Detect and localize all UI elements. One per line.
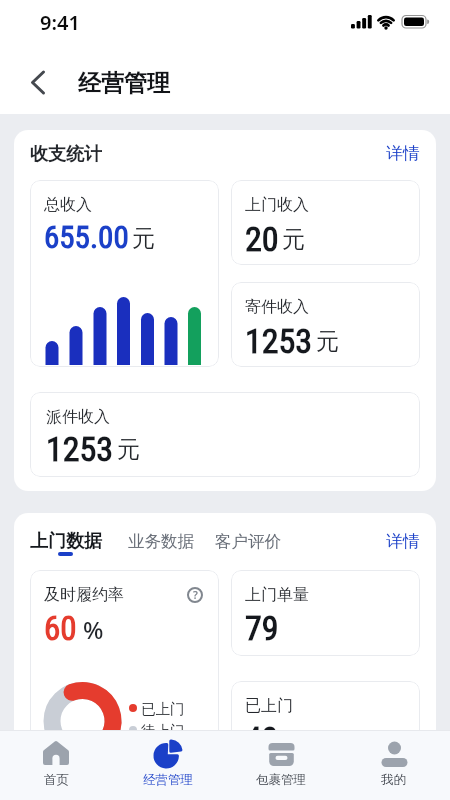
button[interactable]: 详情 <box>386 143 420 163</box>
staticText: 1253 <box>46 429 114 469</box>
staticText: 元 <box>316 327 339 356</box>
staticText: 元 <box>117 435 140 464</box>
staticText: 待上门 <box>141 722 185 740</box>
button[interactable]: ? <box>187 587 203 603</box>
button[interactable]: 首页 <box>0 731 112 800</box>
staticText: 1253 <box>245 321 313 361</box>
staticText: 及时履约率 <box>44 585 124 605</box>
staticText: 60 <box>44 609 77 648</box>
button[interactable]: 包裹管理 <box>224 731 337 800</box>
button[interactable]: 客户评价 <box>215 531 281 552</box>
button[interactable]: 详情 <box>386 531 420 552</box>
staticText: 79 <box>245 608 279 648</box>
staticText: ? <box>193 588 198 602</box>
button[interactable]: 经营管理 <box>112 731 224 800</box>
staticText: 9:41 <box>40 9 80 36</box>
staticText: 已上门 <box>141 700 185 718</box>
staticText: 首页 <box>44 772 69 788</box>
button[interactable]: 我的 <box>337 731 450 800</box>
staticText: % <box>83 613 104 646</box>
button[interactable]: 业务数据 <box>128 531 194 552</box>
staticText: 元 <box>132 224 155 253</box>
staticText: 收支统计 <box>30 143 102 163</box>
staticText: 49 <box>245 719 279 759</box>
button[interactable] <box>22 66 54 98</box>
staticText: 经营管理 <box>78 69 170 98</box>
staticText: 寄件收入 <box>245 297 309 317</box>
staticText: 经营管理 <box>143 772 193 788</box>
staticText: 元 <box>282 225 305 254</box>
staticText: 派件收入 <box>46 407 110 427</box>
staticText: 总收入 <box>44 195 92 215</box>
staticText: 655.00 <box>44 219 129 255</box>
staticText: 20 <box>245 219 279 259</box>
staticText: 已上门 <box>245 696 293 716</box>
staticText: 上门单量 <box>245 585 309 605</box>
staticText: 上门收入 <box>245 195 309 215</box>
button[interactable]: 上门数据 <box>30 530 102 553</box>
staticText: 我的 <box>381 772 406 788</box>
staticText: 包裹管理 <box>256 772 306 788</box>
